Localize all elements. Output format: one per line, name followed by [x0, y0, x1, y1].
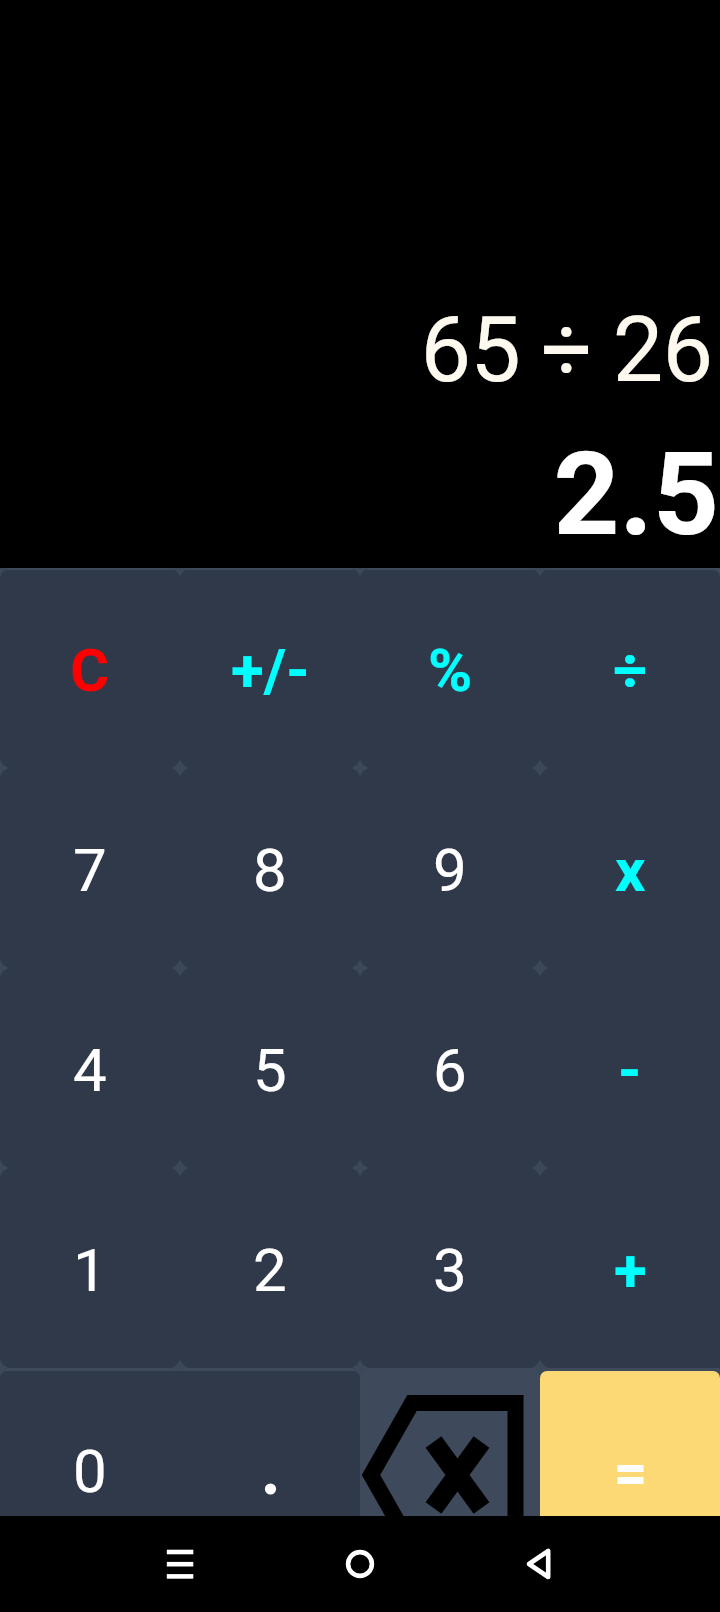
staticText: 6 — [433, 1035, 467, 1105]
button[interactable]: + — [540, 1170, 720, 1370]
staticText: C — [70, 635, 110, 705]
button[interactable]: 6 — [360, 970, 540, 1170]
button[interactable]: Back — [492, 1516, 588, 1612]
button[interactable]: ÷ — [540, 570, 720, 770]
button[interactable]: 9 — [360, 770, 540, 970]
staticText: 3 — [433, 1235, 467, 1305]
staticText: 7 — [73, 835, 107, 905]
staticText: 9 — [433, 835, 467, 905]
staticText: 0 — [73, 1436, 107, 1506]
button[interactable]: 7 — [0, 770, 180, 970]
button[interactable]: C — [0, 570, 180, 770]
staticText: 5 — [253, 1035, 287, 1105]
button[interactable]: Recent apps — [132, 1516, 228, 1612]
staticText: % — [428, 635, 473, 705]
button[interactable]: Home — [312, 1516, 408, 1612]
button[interactable]: 0 — [0, 1371, 180, 1571]
button[interactable]: Backspace — [360, 1368, 540, 1568]
button[interactable]: 4 — [0, 970, 180, 1170]
staticText: +/- — [231, 635, 310, 705]
staticText: 65 ÷ 26 — [0, 298, 712, 403]
staticText: 1 — [73, 1235, 107, 1305]
staticText: 2.5 — [0, 427, 719, 562]
staticText: 8 — [253, 835, 287, 905]
button[interactable]: 3 — [360, 1170, 540, 1370]
button[interactable]: - — [540, 970, 720, 1170]
button[interactable]: 1 — [0, 1170, 180, 1370]
button[interactable]: x — [540, 770, 720, 970]
staticText: ÷ — [613, 635, 648, 705]
button[interactable]: 5 — [180, 970, 360, 1170]
button[interactable]: Equals — [540, 1371, 720, 1571]
staticText: + — [614, 1235, 647, 1305]
button[interactable]: Decimal point — [180, 1371, 360, 1571]
staticText: x — [615, 835, 646, 905]
button[interactable]: +/- — [180, 570, 360, 770]
staticText: - — [618, 1035, 642, 1105]
staticText: 2 — [253, 1235, 287, 1305]
button[interactable]: 8 — [180, 770, 360, 970]
staticText: 4 — [73, 1035, 107, 1105]
button[interactable]: % — [360, 570, 540, 770]
button[interactable]: 2 — [180, 1170, 360, 1370]
